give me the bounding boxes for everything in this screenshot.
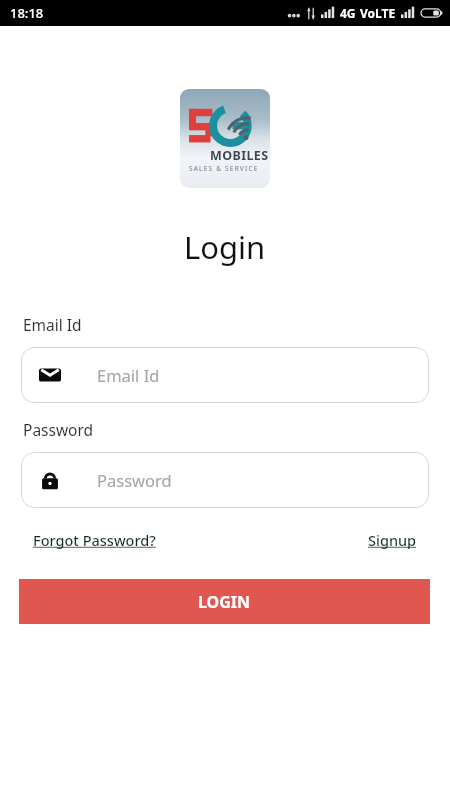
staticText: Email Id xyxy=(23,314,82,335)
staticText: Password xyxy=(23,419,94,440)
staticText: Email Id xyxy=(97,364,160,386)
staticText: Login xyxy=(184,226,266,268)
staticText: SALES & SERVICE xyxy=(189,164,259,173)
other: Email xyxy=(39,364,61,386)
staticText: Forgot Password? xyxy=(33,530,156,550)
staticText: Signup xyxy=(368,530,417,550)
staticText: 4G xyxy=(340,5,356,21)
staticText: 18:18 xyxy=(10,4,44,22)
staticText: VoLTE xyxy=(360,5,396,21)
staticText: LOGIN xyxy=(198,591,251,613)
button[interactable]: LOGIN xyxy=(19,579,430,624)
staticText: MOBILES xyxy=(210,147,269,164)
button[interactable]: Signup xyxy=(368,530,417,550)
staticText: Password xyxy=(97,469,172,491)
other: Password xyxy=(39,469,61,491)
button[interactable]: Password xyxy=(21,452,429,508)
button[interactable]: Email xyxy=(21,347,429,403)
button[interactable]: Forgot Password? xyxy=(33,530,156,550)
